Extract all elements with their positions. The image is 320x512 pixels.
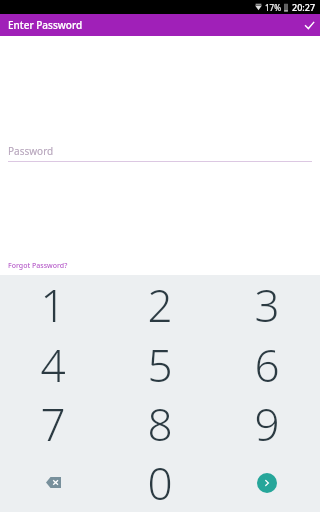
button[interactable]: 4: [0, 335, 106, 394]
button[interactable]: 0: [106, 453, 213, 512]
staticText: Enter Password: [8, 18, 83, 32]
staticText: 5: [147, 335, 173, 394]
button[interactable]: Submit: [213, 453, 320, 512]
button[interactable]: 7: [0, 394, 106, 453]
button[interactable]: 1: [0, 275, 106, 335]
button[interactable]: Backspace: [0, 453, 106, 512]
staticText: 7: [40, 394, 66, 453]
staticText: 20:27: [292, 1, 316, 13]
button[interactable]: Password: [0, 144, 320, 162]
button[interactable]: 9: [213, 394, 320, 453]
staticText: 3: [254, 275, 280, 335]
staticText: Password: [8, 144, 54, 158]
button[interactable]: 2: [106, 275, 213, 335]
button[interactable]: Confirm: [298, 14, 320, 36]
button[interactable]: 3: [213, 275, 320, 335]
button[interactable]: 5: [106, 335, 213, 394]
staticText: 17%: [265, 2, 281, 13]
staticText: 1: [40, 275, 66, 335]
staticText: 8: [147, 394, 173, 453]
staticText: 2: [147, 275, 173, 335]
button[interactable]: Forgot Password?: [8, 261, 68, 271]
staticText: 9: [254, 394, 280, 453]
staticText: 0: [147, 453, 173, 512]
button[interactable]: 8: [106, 394, 213, 453]
button[interactable]: 6: [213, 335, 320, 394]
staticText: 6: [254, 335, 280, 394]
staticText: 4: [40, 335, 66, 394]
